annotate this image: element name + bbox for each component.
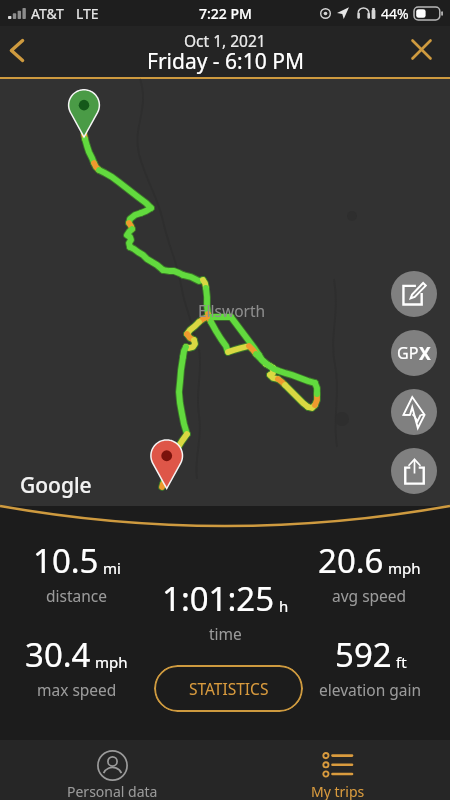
staticText: mph <box>388 558 421 578</box>
staticText: h <box>279 596 289 616</box>
staticText: LTE <box>76 4 99 23</box>
staticText: GP <box>397 342 419 364</box>
button[interactable]: Back <box>0 28 39 72</box>
staticText: Friday - 6:10 PM <box>147 47 304 76</box>
staticText: My trips <box>311 782 365 800</box>
button[interactable]: STATISTICS <box>154 665 303 712</box>
staticText: max speed <box>37 679 117 700</box>
staticText: 7:22 PM <box>199 4 252 23</box>
staticText: AT&T <box>31 4 64 23</box>
staticText: mph <box>95 652 128 672</box>
staticText: elevation gain <box>319 679 422 700</box>
staticText: Ellsworth <box>198 300 266 321</box>
button[interactable]: Share <box>391 448 437 494</box>
staticText: Google <box>20 471 92 500</box>
staticText: 1:01:25 <box>162 576 275 621</box>
staticText: mi <box>103 558 121 578</box>
button[interactable]: Elevation profile <box>391 389 437 435</box>
staticText: 44% <box>381 4 409 23</box>
staticText: avg speed <box>332 585 407 606</box>
button[interactable]: Personal data <box>0 740 225 800</box>
button[interactable]: Close <box>399 27 443 71</box>
staticText: 30.4 <box>25 632 91 677</box>
staticText: 592 <box>335 632 392 677</box>
staticText: 10.5 <box>33 538 99 583</box>
staticText: ft <box>396 652 407 672</box>
staticText: STATISTICS <box>189 678 269 699</box>
staticText: Oct 1, 2021 <box>184 30 266 51</box>
button[interactable]: Edit trip <box>391 271 437 317</box>
staticText: distance <box>46 585 108 606</box>
button[interactable]: My trips <box>225 740 450 800</box>
staticText: X <box>419 341 431 365</box>
staticText: 20.6 <box>318 538 384 583</box>
staticText: time <box>209 623 242 644</box>
staticText: Personal data <box>67 782 158 800</box>
button[interactable]: Export GPX <box>391 330 437 376</box>
